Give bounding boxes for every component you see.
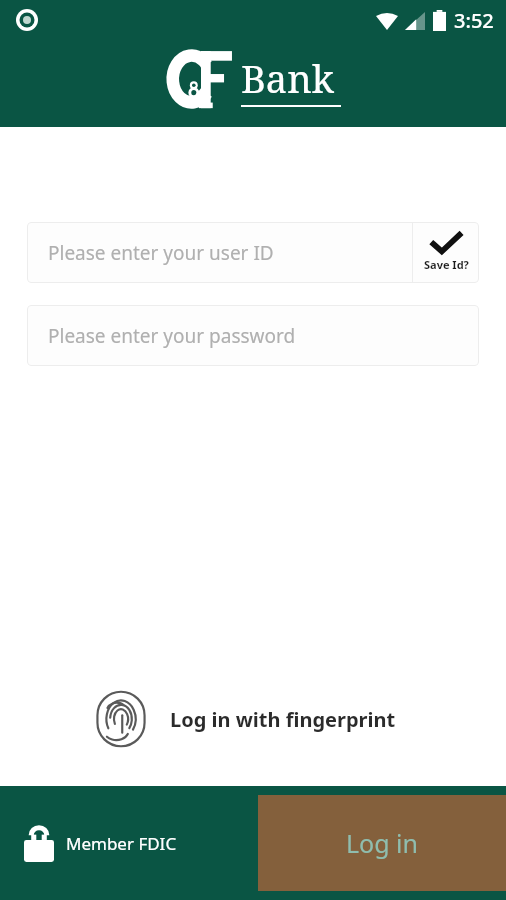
other: Fingerprint [90, 688, 152, 750]
button[interactable]: Log in [258, 795, 506, 891]
staticText: Bank [241, 52, 334, 104]
staticText: Save Id? [424, 257, 469, 272]
button[interactable]: Secure [24, 824, 177, 862]
staticText: Please enter your user ID [48, 240, 412, 266]
staticText: Log in with fingerprint [170, 706, 396, 733]
button[interactable]: Please enter your password [27, 305, 479, 366]
staticText: Log in [346, 826, 419, 860]
button[interactable]: Please enter your user ID [27, 222, 479, 283]
staticText: Member FDIC [66, 832, 177, 855]
button[interactable]: Fingerprint [90, 688, 396, 750]
staticText: 3:52 [454, 7, 494, 34]
staticText: Please enter your password [48, 323, 296, 349]
button[interactable]: Save Id? [413, 223, 479, 282]
other: Secure [24, 824, 54, 862]
